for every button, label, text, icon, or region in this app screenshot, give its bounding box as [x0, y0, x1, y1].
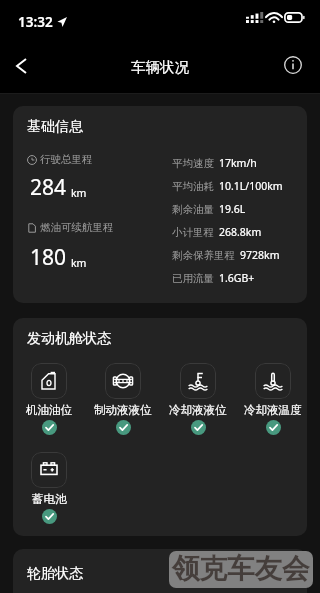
staticText: 19.6L [219, 202, 246, 216]
staticText: km [71, 186, 87, 200]
staticText: 平均速度 [172, 157, 214, 170]
staticText: 9728km [240, 248, 280, 262]
staticText: 冷却液液位 [169, 403, 227, 417]
staticText: 蓄电池 [32, 492, 67, 506]
staticText: 1.6GB+ [219, 271, 255, 285]
staticText: 制动液液位 [94, 403, 152, 417]
staticText: 小计里程 [172, 226, 214, 239]
staticText: 燃油可续航里程 [40, 221, 114, 234]
staticText: 机油油位 [26, 403, 72, 417]
staticText: 行驶总里程 [40, 153, 93, 166]
staticText: 剩余保养里程 [172, 249, 235, 262]
staticText: 冷却液温度 [244, 403, 302, 417]
staticText: 平均油耗 [172, 180, 214, 193]
staticText: 轮胎状态 [27, 565, 83, 583]
button[interactable]: 制动液液位 [92, 363, 154, 435]
button[interactable]: Info [272, 44, 314, 86]
button[interactable]: 冷却液温度 [242, 363, 304, 435]
button[interactable]: 冷却液液位 [167, 363, 229, 435]
staticText: 180 [30, 243, 67, 272]
staticText: 发动机舱状态 [27, 330, 111, 348]
staticText: 284 [30, 173, 67, 202]
staticText: 13:32 [18, 13, 53, 31]
staticText: 基础信息 [27, 118, 83, 136]
staticText: 剩余油量 [172, 203, 214, 216]
staticText: 车辆状况 [131, 58, 189, 76]
button[interactable]: Back [1, 45, 42, 86]
staticText: 10.1L/100km [219, 179, 283, 193]
staticText: 已用流量 [172, 272, 214, 285]
staticText: 268.8km [219, 225, 262, 239]
button[interactable]: 轮胎状态 [13, 549, 307, 593]
button[interactable]: 机油油位 [18, 363, 80, 435]
button[interactable]: 蓄电池 [18, 452, 80, 524]
staticText: km [71, 256, 87, 270]
staticText: 17km/h [219, 156, 257, 170]
staticText: 领克车友会 [172, 552, 310, 587]
